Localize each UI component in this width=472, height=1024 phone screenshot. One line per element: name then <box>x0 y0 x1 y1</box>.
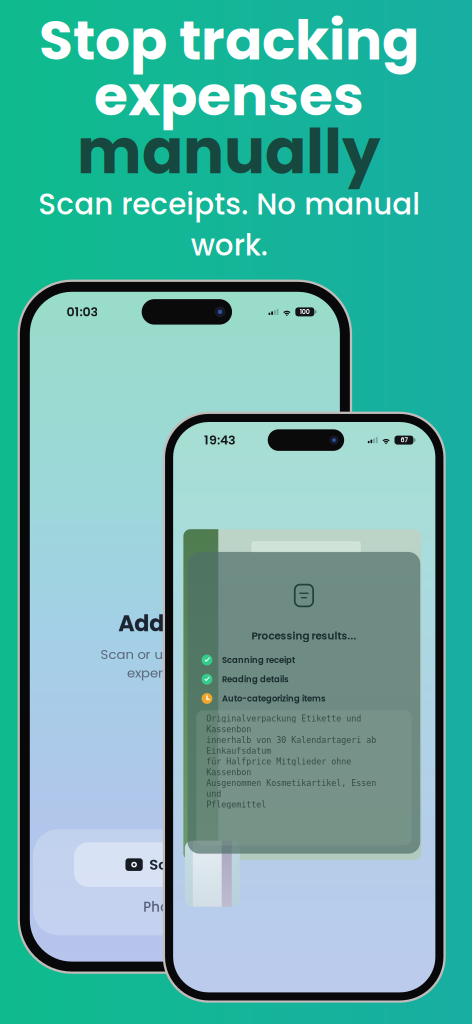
staticText: manually <box>77 109 381 195</box>
button[interactable]: Photo library <box>33 887 337 927</box>
staticText: innerhalb von 30 Kalendartageri ab <box>206 735 376 745</box>
staticText: Ausgenommen Kosmetikartikel, Essen <box>206 778 376 788</box>
staticText: expenses <box>94 58 364 135</box>
staticText: Scan receipt <box>149 854 244 875</box>
staticText: Kassenbon <box>206 724 251 734</box>
button[interactable]: Scan receipt <box>74 842 296 887</box>
staticText: Pflegemittel <box>206 800 266 809</box>
staticText: 19:43 <box>204 431 236 449</box>
staticText: Einkaufsdatum <box>206 746 271 756</box>
staticText: Processing results... <box>251 628 356 643</box>
staticText: Scan or upload to add an expense instant… <box>100 645 269 682</box>
staticText: Reading details <box>222 673 289 685</box>
staticText: Originalverpackung Etikette und <box>206 714 361 723</box>
staticText: und <box>206 789 221 799</box>
staticText: 67 <box>400 436 407 444</box>
staticText: Photo library <box>143 898 226 916</box>
staticText: Stop tracking <box>39 2 419 79</box>
staticText: 01:03 <box>66 303 98 321</box>
staticText: Auto-categorizing items <box>222 693 326 704</box>
staticText: Scan receipts. No manual work. <box>38 184 420 266</box>
staticText: 100 <box>300 307 310 316</box>
staticText: Kassenbon <box>206 767 251 777</box>
staticText: Scanning receipt <box>222 654 295 666</box>
staticText: Add receipt <box>118 608 251 639</box>
staticText: für Halfprice Mitglieder ohne <box>206 757 351 766</box>
